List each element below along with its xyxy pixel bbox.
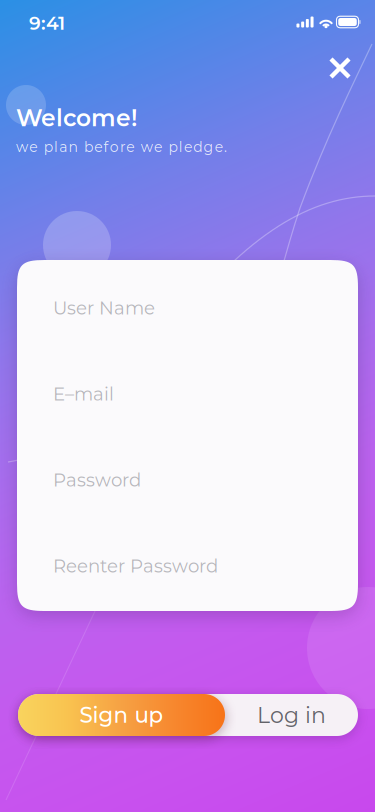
staticText: Password (53, 469, 141, 491)
staticText: 9:41 (29, 12, 65, 34)
staticText: Reenter Password (53, 555, 218, 577)
staticText: Welcome! (16, 104, 137, 132)
button[interactable]: Log in (225, 694, 358, 736)
staticText: Log in (257, 702, 326, 728)
button[interactable]: User Name (17, 265, 358, 351)
button[interactable]: Sign up (18, 694, 225, 736)
staticText: E–mail (53, 383, 114, 405)
button[interactable]: Password (17, 437, 358, 523)
button[interactable]: Close (318, 46, 362, 90)
staticText: User Name (53, 297, 155, 319)
button[interactable]: Reenter Password (17, 523, 358, 609)
staticText: Sign up (79, 702, 163, 728)
button[interactable]: E–mail (17, 351, 358, 437)
staticText: we plan before we pledge. (16, 138, 227, 156)
